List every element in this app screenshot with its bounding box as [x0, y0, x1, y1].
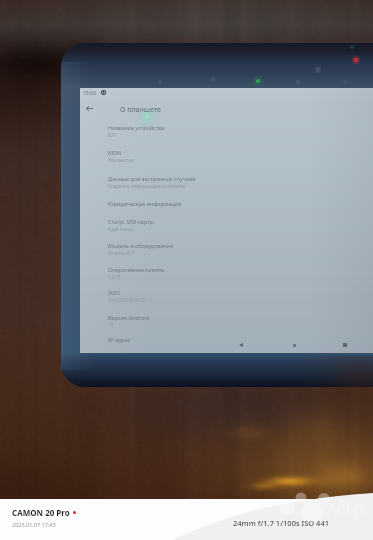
button[interactable]: Назад: [235, 339, 247, 351]
staticText: Владелец, информация и контакты: [108, 183, 186, 189]
staticText: 354296510616721: [108, 297, 147, 303]
staticText: Статус SIM-карты: [108, 218, 154, 225]
button[interactable]: IMEI: [80, 286, 373, 308]
staticText: vito: [331, 495, 364, 521]
staticText: Версия Android: [108, 314, 150, 321]
button[interactable]: IP-адрес: [80, 333, 373, 351]
staticText: IMEI: [108, 289, 120, 296]
staticText: 1.0 ГБ: [108, 274, 121, 280]
button[interactable]: Статус SIM-карты: [80, 215, 373, 237]
button[interactable]: Юридическая информация: [80, 197, 373, 215]
button[interactable]: Главный экран: [288, 339, 300, 351]
button[interactable]: Версия Android: [80, 311, 373, 333]
staticText: 24mm f/1.7 1/100s ISO 441: [233, 518, 329, 528]
staticText: CAMON 20 Pro: [12, 507, 70, 518]
staticText: Название устройства: [108, 124, 165, 131]
staticText: Идёт поиск: [108, 226, 133, 232]
staticText: B21: [108, 132, 117, 138]
staticText: Модель и оборудование: [108, 242, 174, 249]
staticText: 15:03: [83, 90, 96, 97]
button[interactable]: Назад: [83, 102, 96, 115]
staticText: Неизвестно: [108, 157, 134, 163]
button[interactable]: Название устройства: [80, 121, 373, 143]
staticText: О планшете: [120, 105, 161, 115]
staticText: Оперативная память: [108, 266, 165, 273]
button[interactable]: Модель и оборудование: [80, 239, 373, 261]
staticText: 2025.01.07 17:43: [12, 521, 56, 528]
button[interactable]: MDN: [80, 146, 373, 168]
button[interactable]: Недавние приложения: [339, 339, 351, 351]
staticText: MDN: [108, 149, 122, 156]
button[interactable]: Оперативная память: [80, 263, 373, 285]
staticText: Юридическая информация: [108, 200, 182, 207]
staticText: 10: [108, 322, 114, 328]
staticText: Данные для экстренных случаев: [108, 175, 196, 182]
staticText: Модель: B21: [108, 250, 136, 256]
staticText: IP-адрес: [108, 336, 131, 343]
button[interactable]: Данные для экстренных случаев: [80, 172, 373, 194]
